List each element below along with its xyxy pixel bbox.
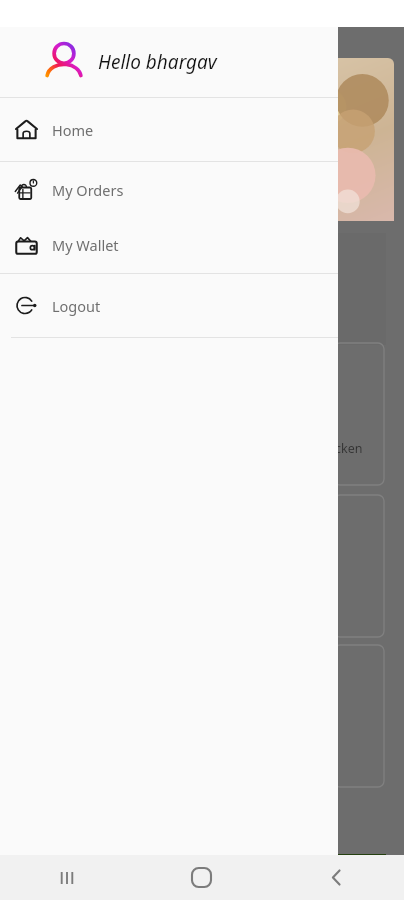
button[interactable]: My Orders: [0, 162, 338, 217]
button[interactable]: Recent apps: [0, 855, 134, 900]
staticText: My Orders: [52, 180, 124, 200]
button[interactable]: Logout: [0, 274, 338, 337]
button[interactable]: Hello bhargav: [0, 27, 338, 97]
staticText: Hello bhargav: [98, 49, 217, 75]
staticText: cken: [335, 440, 363, 457]
staticText: Home: [52, 120, 94, 140]
button[interactable]: Back: [269, 855, 404, 900]
button[interactable]: My Wallet: [0, 217, 338, 273]
button[interactable]: Home: [134, 855, 269, 900]
staticText: My Wallet: [52, 235, 119, 255]
button[interactable]: Home: [0, 98, 338, 161]
staticText: Logout: [52, 296, 101, 316]
